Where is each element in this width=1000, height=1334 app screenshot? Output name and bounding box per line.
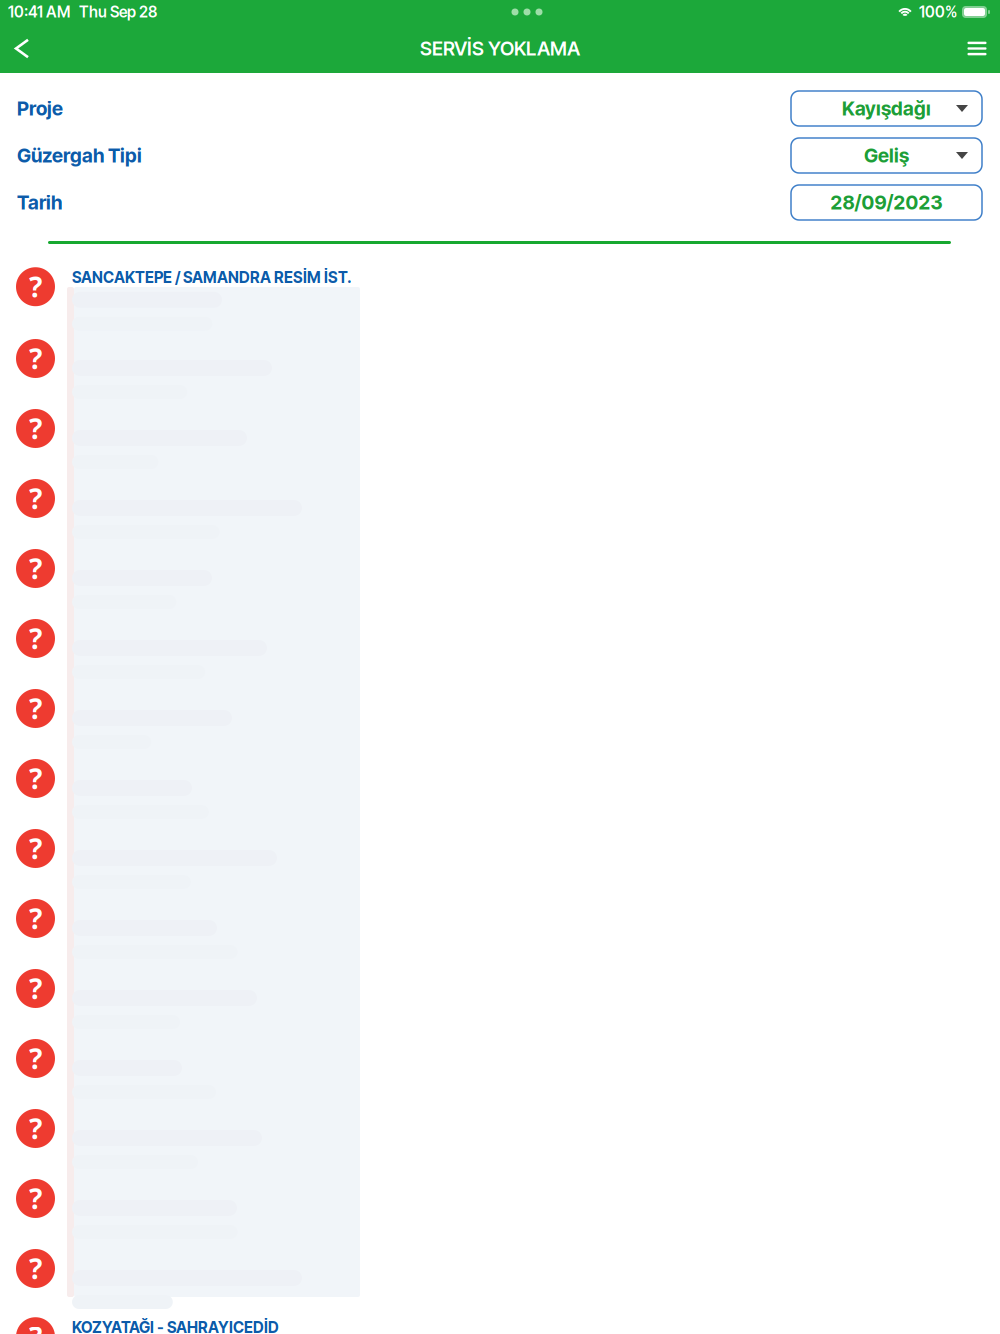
button[interactable]: ? xyxy=(0,536,1000,606)
staticText: SERVİS YOKLAMA xyxy=(420,37,580,60)
staticText: ? xyxy=(29,1180,42,1217)
staticText: Güzergah Tipi xyxy=(17,144,142,167)
staticText: Tarih xyxy=(17,191,62,214)
button[interactable]: ? xyxy=(0,396,1000,466)
button[interactable]: ? xyxy=(0,886,1000,956)
staticText: ? xyxy=(29,1318,42,1334)
staticText: Kayışdağı xyxy=(842,97,931,120)
button[interactable]: ? xyxy=(0,956,1000,1026)
button[interactable]: ? xyxy=(0,1026,1000,1096)
staticText: ? xyxy=(29,970,42,1007)
staticText: 28/09/2023 xyxy=(830,191,942,214)
staticText: ? xyxy=(29,1040,42,1077)
staticText: 10:41 AM xyxy=(8,3,70,21)
staticText: ? xyxy=(29,900,42,937)
staticText: ? xyxy=(29,340,42,377)
staticText: ? xyxy=(29,410,42,447)
button[interactable]: ? xyxy=(0,1166,1000,1236)
staticText: Geliş xyxy=(864,144,909,167)
button[interactable]: Geliş xyxy=(791,138,982,173)
staticText: SANCAKTEPE / SAMANDRA RESİM İST. xyxy=(72,268,352,287)
staticText: ? xyxy=(29,760,42,797)
button[interactable]: ? xyxy=(0,466,1000,536)
button[interactable]: ? xyxy=(0,256,1000,326)
staticText: ? xyxy=(29,268,42,305)
button[interactable]: ? xyxy=(0,326,1000,396)
staticText: ? xyxy=(29,1110,42,1147)
button[interactable]: 28/09/2023 xyxy=(791,185,982,220)
button[interactable]: ? xyxy=(0,606,1000,676)
button[interactable]: ? xyxy=(0,1096,1000,1166)
staticText: 100% xyxy=(919,3,957,21)
button[interactable]: ? xyxy=(0,1306,1000,1334)
staticText: ? xyxy=(29,480,42,517)
staticText: ? xyxy=(29,690,42,727)
staticText: ? xyxy=(29,620,42,657)
staticText: ? xyxy=(29,830,42,867)
button[interactable]: ? xyxy=(0,1236,1000,1306)
button[interactable]: ? xyxy=(0,746,1000,816)
staticText: Thu Sep 28 xyxy=(79,3,157,21)
button[interactable]: Kayışdağı xyxy=(791,91,982,126)
staticText: ? xyxy=(29,550,42,587)
button[interactable]: Back xyxy=(0,24,44,73)
button[interactable]: ? xyxy=(0,676,1000,746)
button[interactable]: Menu xyxy=(954,24,1000,73)
staticText: ? xyxy=(29,1250,42,1287)
staticText: Proje xyxy=(17,97,63,120)
button[interactable]: ? xyxy=(0,816,1000,886)
staticText: KOZYATAĞI - SAHRAYICEDİD xyxy=(72,1318,279,1334)
